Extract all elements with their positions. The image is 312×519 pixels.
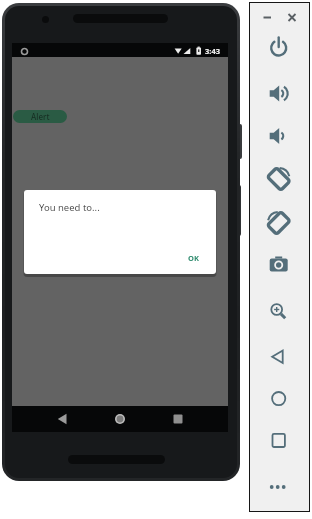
button[interactable] [267,429,291,452]
button[interactable] [108,406,132,432]
staticText: Alert [31,111,50,122]
staticText: 3:43 [205,46,220,56]
button[interactable] [267,212,291,235]
button[interactable] [267,299,291,322]
button[interactable]: Alert [13,110,67,123]
staticText: You need to... [39,201,100,214]
button[interactable]: OK [178,248,208,268]
button[interactable] [284,7,300,22]
button[interactable] [267,168,291,191]
button[interactable] [267,82,291,105]
button[interactable] [267,387,291,410]
button[interactable] [259,8,275,22]
button[interactable] [50,406,74,432]
button[interactable] [267,345,291,368]
button[interactable] [267,125,291,148]
staticText: OK [188,253,199,263]
button[interactable] [166,406,190,432]
button[interactable] [267,476,291,499]
button[interactable] [267,254,291,277]
button[interactable] [267,37,291,60]
